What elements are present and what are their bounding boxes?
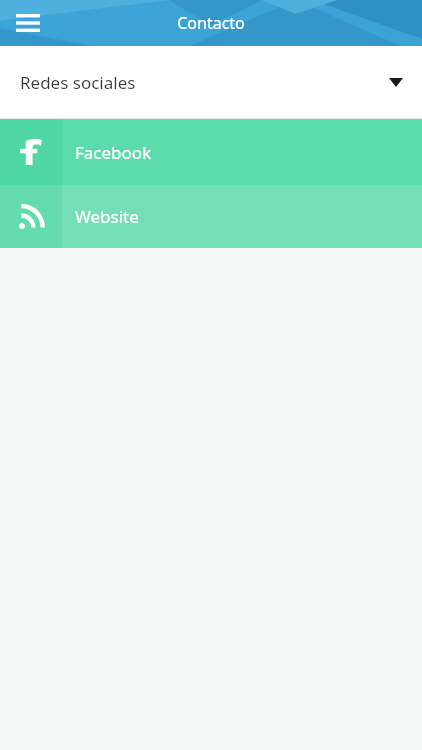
button[interactable]: Facebook	[0, 119, 422, 185]
staticText: Redes sociales	[20, 71, 136, 94]
staticText: Contacto	[0, 12, 422, 34]
staticText: Facebook	[75, 141, 152, 164]
button[interactable]: Open navigation menu	[8, 3, 48, 43]
staticText: Website	[75, 205, 139, 228]
button[interactable]: Website	[0, 185, 422, 248]
button[interactable]: Redes sociales	[0, 46, 422, 118]
